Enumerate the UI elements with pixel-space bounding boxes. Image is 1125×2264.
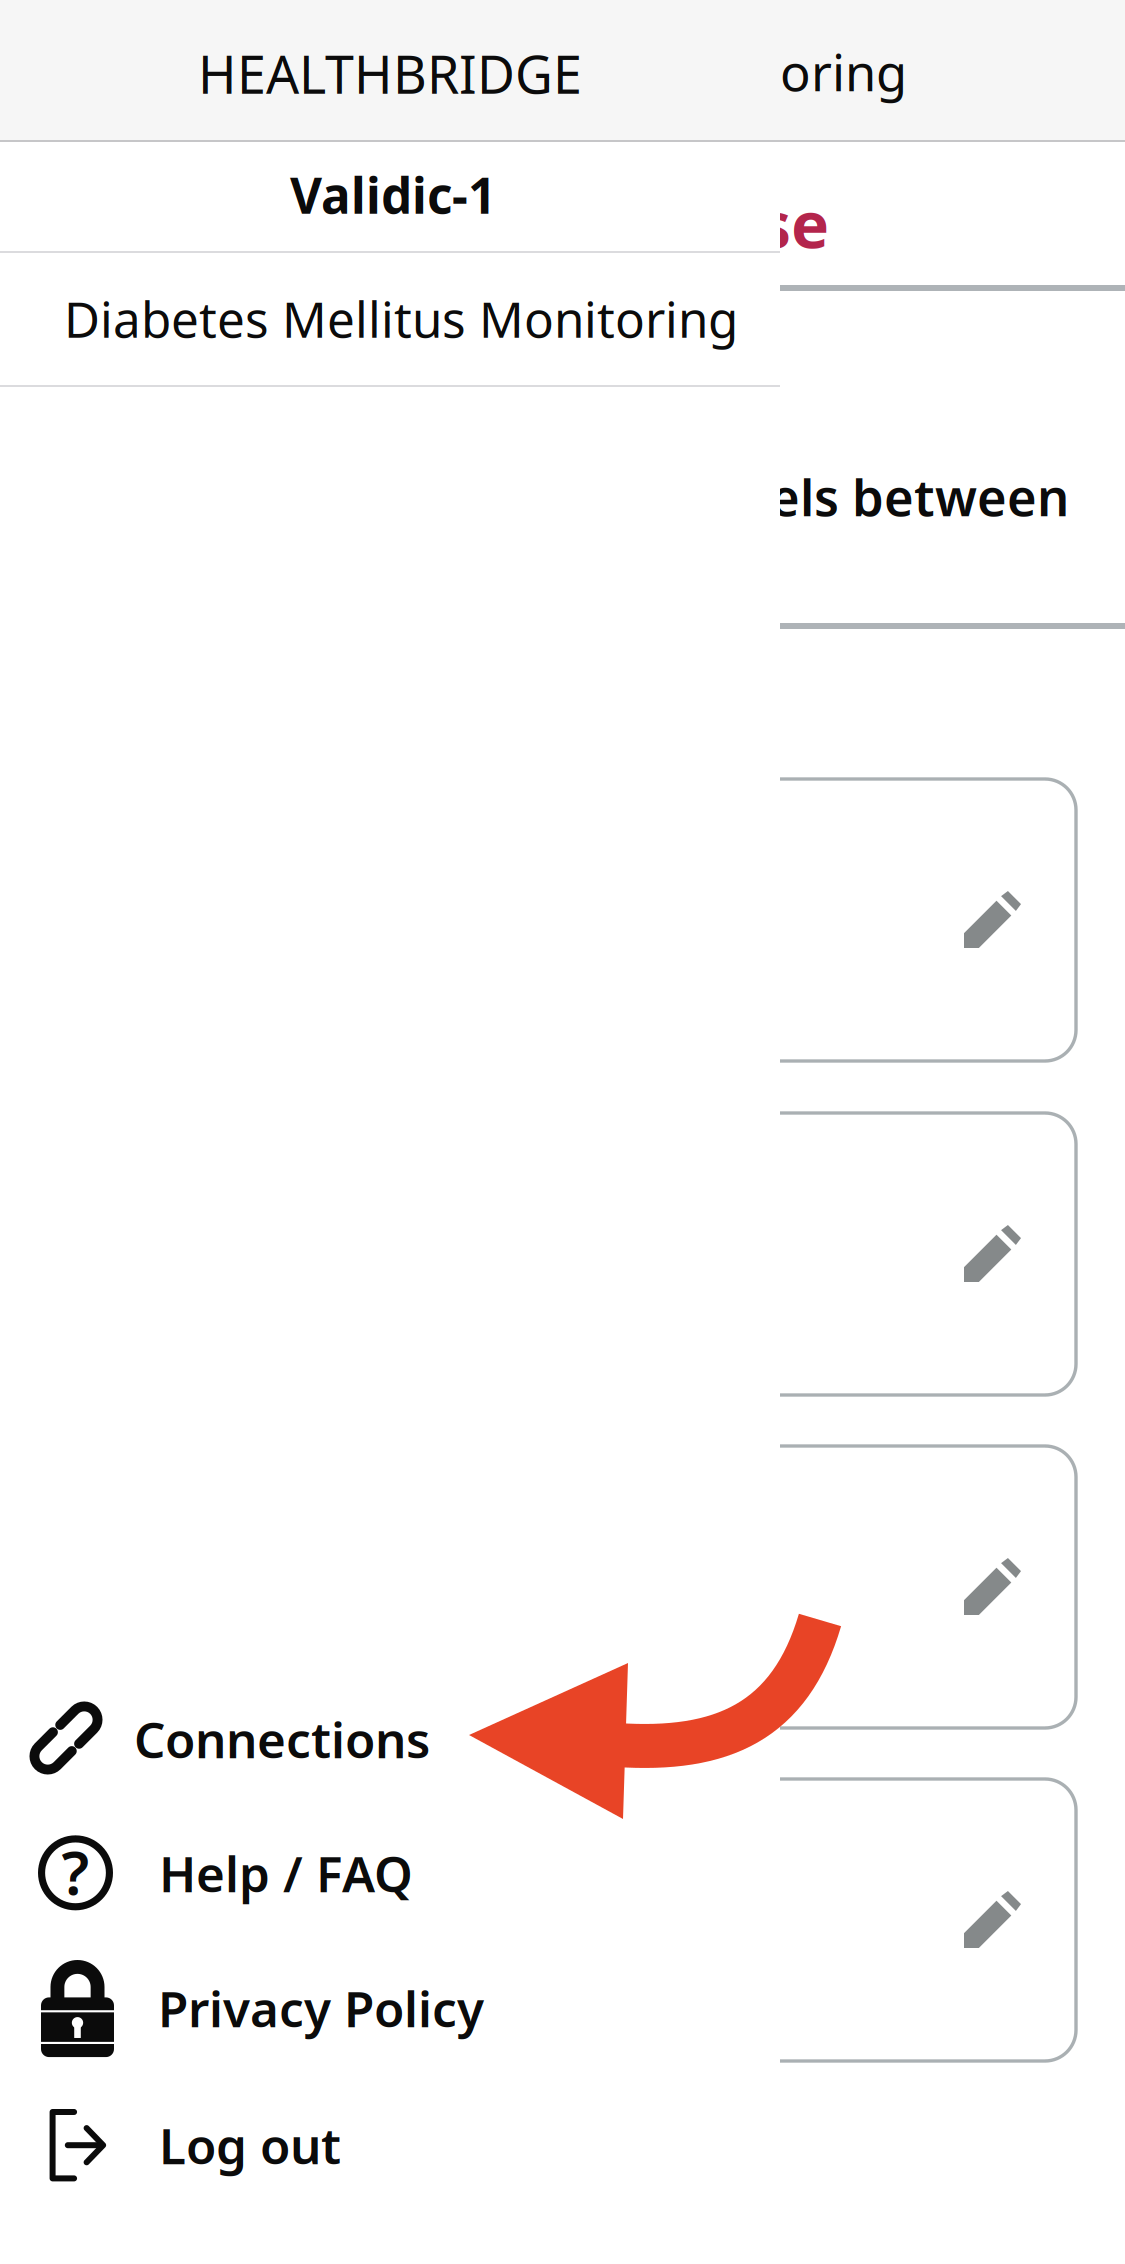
staticText: ?	[61, 1832, 89, 1912]
staticText: Blood Glucose	[380, 181, 829, 266]
staticText: Record your glucose levels between	[186, 463, 1069, 530]
button[interactable]: Validic-1	[3, 140, 783, 249]
staticText: Connections	[134, 1706, 430, 1772]
button[interactable]: Privacy Policy	[0, 1941, 780, 2075]
staticText: Diabetes Mellitus Monitoring	[219, 38, 907, 105]
button[interactable]: Log out	[0, 2078, 780, 2212]
button[interactable]: ?	[0, 1805, 780, 1939]
staticText: Privacy Policy	[158, 1975, 484, 2041]
staticText: HEALTHBRIDGE	[198, 39, 582, 108]
button[interactable]: Connections	[0, 1671, 780, 1805]
staticText: Diabetes Mellitus Monitoring	[64, 286, 738, 351]
button[interactable]: Diabetes Mellitus Monitoring	[11, 253, 791, 384]
staticText: Log out	[159, 2112, 341, 2178]
staticText: Validic-1	[290, 162, 496, 227]
staticText: Help / FAQ	[159, 1840, 413, 1906]
